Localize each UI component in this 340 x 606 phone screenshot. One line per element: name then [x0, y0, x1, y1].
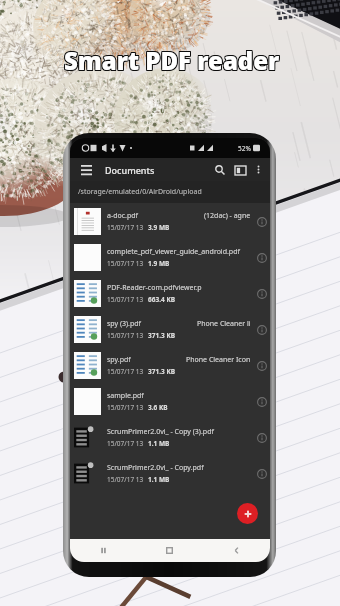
- staticText: 371.3 KB: [148, 367, 176, 376]
- staticText: /storage/emulated/0/AirDroid/upload: [78, 187, 202, 197]
- button[interactable]: spy (3).pdf: [70, 311, 270, 347]
- staticText: 15/07/17 13: [107, 331, 144, 340]
- button[interactable]: spy.pdf: [70, 347, 270, 383]
- staticText: 15/07/17 13: [107, 223, 144, 232]
- staticText: Smart PDF reader: [63, 43, 279, 76]
- button[interactable]: View mode: [230, 160, 250, 180]
- staticText: Smart PDF reader: [65, 44, 281, 77]
- staticText: 3.6 KB: [148, 403, 168, 412]
- staticText: 15/07/17 13: [107, 439, 144, 448]
- button[interactable]: Search: [210, 160, 230, 180]
- staticText: ScrumPrimer2.0vi_ - Copy.pdf: [107, 463, 204, 473]
- button[interactable]: a-doc.pdf: [70, 203, 270, 239]
- button[interactable]: Info: [253, 393, 270, 410]
- button[interactable]: Info: [253, 213, 270, 230]
- staticText: 663.4 KB: [148, 295, 176, 304]
- staticText: Documents: [105, 164, 155, 176]
- staticText: (12dac) - agne: [204, 211, 251, 221]
- staticText: Smart PDF reader: [64, 43, 280, 76]
- staticText: ScrumPrimer2.0vi_ - Copy (3).pdf: [107, 427, 214, 437]
- staticText: PDF-Reader-com.pdfviewer.p: [107, 283, 202, 293]
- staticText: 15/07/17 13: [107, 259, 144, 268]
- button[interactable]: sample.pdf: [70, 383, 270, 419]
- staticText: Smart PDF reader: [64, 44, 280, 77]
- staticText: Smart PDF reader: [65, 43, 281, 76]
- staticText: spy.pdf: [107, 355, 131, 365]
- staticText: Smart PDF reader: [64, 45, 280, 78]
- staticText: 15/07/17 13: [107, 475, 144, 484]
- button[interactable]: Info: [253, 249, 270, 266]
- staticText: complete_pdf_viewer_guide_android.pdf: [107, 247, 240, 257]
- button[interactable]: complete_pdf_viewer_guide_android.pdf: [70, 239, 270, 275]
- staticText: Smart PDF reader: [63, 44, 279, 77]
- button[interactable]: Info: [253, 429, 270, 446]
- staticText: Phone Cleaner Icon: [186, 355, 251, 365]
- button[interactable]: ScrumPrimer2.0vi_ - Copy (3).pdf: [70, 419, 270, 455]
- staticText: Smart PDF reader: [65, 45, 281, 78]
- button[interactable]: Info: [253, 357, 270, 374]
- staticText: 15/07/17 13: [107, 367, 144, 376]
- staticText: spy (3).pdf: [107, 319, 142, 329]
- button[interactable]: Info: [253, 465, 270, 482]
- staticText: 15/07/17 13: [107, 403, 144, 412]
- staticText: 371.3 KB: [148, 331, 176, 340]
- staticText: 15/07/17 13: [107, 295, 144, 304]
- button[interactable]: Home: [136, 539, 203, 562]
- button[interactable]: Info: [253, 285, 270, 302]
- button[interactable]: Recents: [70, 539, 136, 562]
- staticText: Phone Cleaner li: [197, 319, 251, 329]
- button[interactable]: Menu: [77, 161, 95, 179]
- staticText: 1.1 MB: [148, 439, 170, 448]
- button[interactable]: Info: [253, 321, 270, 338]
- button[interactable]: Back: [203, 539, 270, 562]
- staticText: 1.9 MB: [148, 259, 170, 268]
- button[interactable]: Add: [237, 503, 258, 524]
- staticText: a-doc.pdf: [107, 211, 138, 221]
- staticText: 3.9 MB: [148, 223, 170, 232]
- button[interactable]: More options: [250, 161, 267, 178]
- staticText: sample.pdf: [107, 391, 144, 401]
- staticText: Smart PDF reader: [63, 45, 279, 78]
- staticText: 1.1 MB: [148, 475, 170, 484]
- button[interactable]: ScrumPrimer2.0vi_ - Copy.pdf: [70, 455, 270, 491]
- button[interactable]: PDF-Reader-com.pdfviewer.p: [70, 275, 270, 311]
- staticText: 52%: [238, 144, 251, 153]
